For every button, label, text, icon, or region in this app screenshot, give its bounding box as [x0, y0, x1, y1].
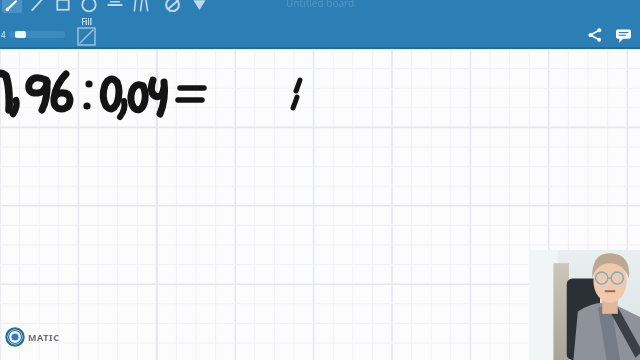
staticText: MATIC: [28, 331, 60, 343]
button[interactable]: Ellipse tool: [78, 0, 100, 13]
button[interactable]: Pen tool: [2, 0, 22, 13]
staticText: 4: [1, 29, 6, 40]
button[interactable]: Text tool: [104, 0, 126, 13]
staticText: Untitled board: [286, 0, 355, 10]
button[interactable]: Share: [584, 24, 606, 46]
button[interactable]: Rectangle tool: [52, 0, 74, 13]
button[interactable]: Webcam video: [529, 250, 640, 360]
button[interactable]: Fill colour: [188, 0, 210, 13]
button[interactable]: Formula tool: [130, 0, 152, 13]
button[interactable]: Comments: [612, 24, 634, 46]
button[interactable]: Fill style: [78, 16, 95, 45]
button[interactable]: 4: [1, 29, 65, 40]
staticText: Fill: [81, 16, 92, 27]
button[interactable]: Eraser tool: [162, 0, 184, 13]
button[interactable]: Line tool: [26, 0, 48, 13]
